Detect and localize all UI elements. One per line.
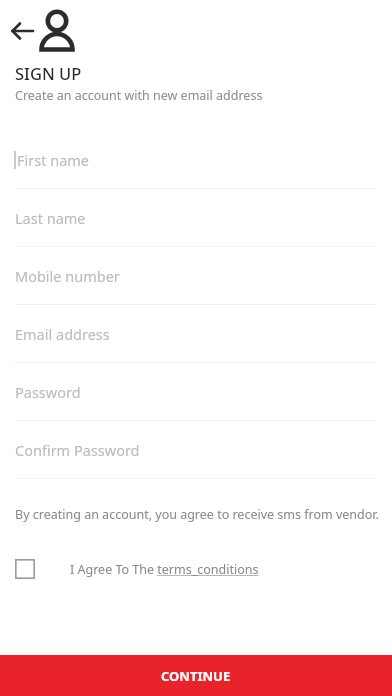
staticText: First name	[17, 150, 90, 170]
button[interactable]: Back	[8, 14, 40, 46]
button[interactable]: CONTINUE	[0, 655, 392, 696]
button[interactable]: Password	[0, 363, 392, 421]
staticText: Create an account with new email address	[15, 87, 263, 104]
staticText: Last name	[15, 208, 86, 228]
button[interactable]: Mobile number	[0, 247, 392, 305]
button[interactable]: First name	[0, 131, 392, 189]
button[interactable]: Account	[36, 4, 76, 54]
staticText: SIGN UP	[15, 62, 82, 84]
staticText: Password	[15, 382, 81, 402]
button[interactable]: Email address	[0, 305, 392, 363]
staticText: I Agree To The terms_conditions	[70, 561, 259, 578]
staticText: Email address	[15, 324, 110, 344]
staticText: Mobile number	[15, 266, 120, 286]
staticText: CONTINUE	[161, 667, 231, 685]
staticText: By creating an account, you agree to rec…	[15, 506, 379, 523]
staticText: Confirm Password	[15, 440, 140, 460]
button[interactable]: Confirm Password	[0, 421, 392, 479]
button[interactable]: I Agree To The terms_conditions	[0, 552, 392, 586]
button[interactable]: Last name	[0, 189, 392, 247]
